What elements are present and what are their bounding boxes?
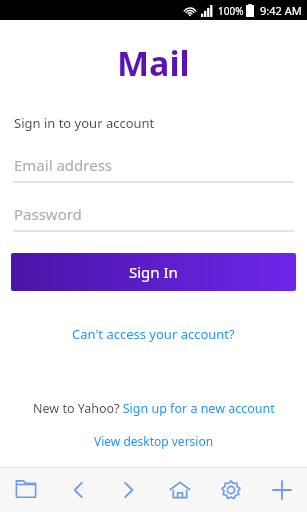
button[interactable]: Folders [0,468,52,512]
staticText: View desktop version [94,433,214,449]
button[interactable]: New [256,468,307,512]
button[interactable]: Sign In [11,253,296,291]
staticText: Sign in to your account [14,114,155,132]
staticText: New to Yahoo? Sign up for a new account [33,400,275,417]
button[interactable]: Home [154,468,205,512]
staticText: Password [14,204,82,224]
button[interactable]: Can't access your account? [66,322,241,346]
staticText: Can't access your account? [72,325,235,343]
button[interactable]: Forward [103,468,154,512]
button[interactable]: View desktop version [94,433,214,449]
button[interactable]: Password [0,198,307,230]
staticText: Sign In [129,262,178,282]
button[interactable]: Settings [205,468,256,512]
button[interactable]: Email address [0,149,307,181]
button[interactable]: Back [52,468,103,512]
button[interactable]: New to Yahoo? Sign up for a new account [29,398,279,419]
staticText: Mail [117,40,190,86]
staticText: Email address [14,155,113,175]
staticText: 100% [218,4,244,18]
staticText: 9:42 AM [260,3,302,18]
